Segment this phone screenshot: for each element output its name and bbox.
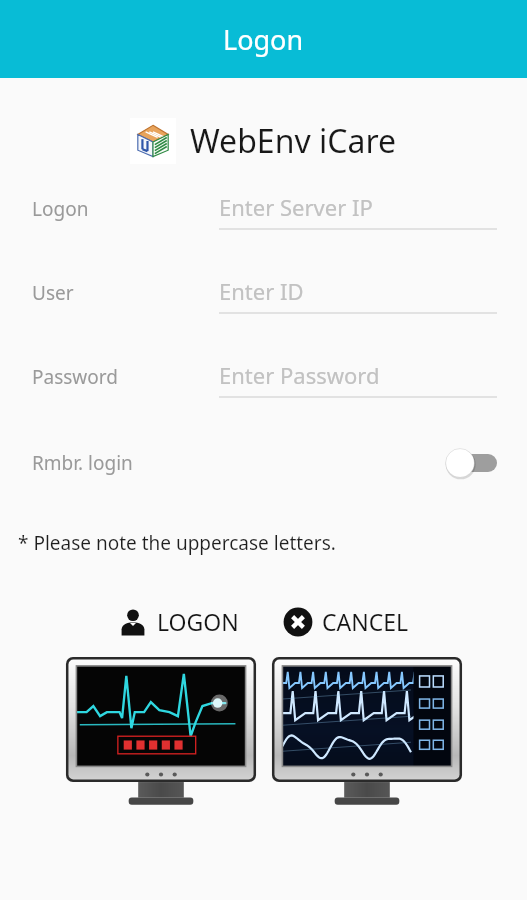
other: Remember login toggle xyxy=(445,447,497,479)
staticText: Enter Server IP xyxy=(219,192,373,222)
staticText: Logon xyxy=(32,196,89,222)
staticText: User xyxy=(32,280,74,306)
staticText: * Please note the uppercase letters. xyxy=(18,530,336,556)
button[interactable]: Logon xyxy=(0,192,527,230)
staticText: Rmbr. login xyxy=(32,450,133,476)
button[interactable]: LOGON xyxy=(112,602,245,641)
staticText: LOGON xyxy=(157,606,239,637)
staticText: CANCEL xyxy=(322,606,409,637)
staticText: WebEnv iCare xyxy=(190,119,397,163)
button[interactable]: Password xyxy=(0,360,527,398)
staticText: Password xyxy=(32,364,118,390)
button[interactable]: CANCEL xyxy=(277,602,415,641)
button[interactable]: Rmbr. login xyxy=(0,436,527,490)
button[interactable]: User xyxy=(0,276,527,314)
staticText: Enter Password xyxy=(219,360,380,390)
staticText: Enter ID xyxy=(219,276,304,306)
staticText: Logon xyxy=(223,21,304,58)
